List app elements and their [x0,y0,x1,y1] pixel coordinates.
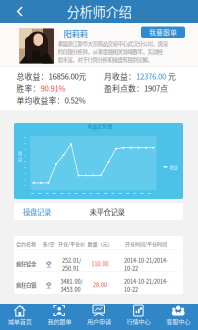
staticText: 总收益：16856.00元 [16,70,86,82]
button[interactable]: 我的跟单 [40,304,79,330]
staticText: 单均收益率：0.52% [16,94,85,106]
staticText: 胜率： [16,82,40,94]
staticText: 多/空 [42,240,54,247]
staticText: 28.00 [93,281,107,289]
staticText: 阳莉莉 [63,27,87,39]
staticText: 开仓/平仓价 [58,240,85,247]
button[interactable]: 我要跟单 [141,26,185,38]
button[interactable]: 操盘记录 [17,204,57,220]
staticText: 2014-10-21/2014- 10-22 [124,256,168,272]
staticText: 252.01/ 250.91 [62,256,81,272]
staticText: 开仓时间/平仓时间 [125,240,167,247]
staticText: （元） [89,126,101,132]
staticText: 行情中心 [127,317,151,326]
button[interactable]: 用户申请 [79,304,119,330]
button[interactable]: 客服中心 [158,304,198,330]
staticText: 收益 [169,164,177,170]
staticText: 数量（元） [87,240,112,247]
staticText: 客服中心 [166,317,190,326]
staticText: 元 [166,70,176,82]
button[interactable]: 行情中心 [119,304,158,330]
staticText: 用户申请 [87,317,111,326]
staticText: 空 [46,260,51,268]
staticText: 疯狂白银 [16,281,36,289]
button[interactable]: 返回 [12,2,28,21]
staticText: 90.91% [40,82,65,94]
staticText: 我要跟单 [149,27,177,37]
staticText: 城单首页 [8,317,32,326]
staticText: 隶属浙江新华大宗商品交易中心武汉分公司，资深 的白银分析师，从事金融相关领域数年… [57,39,167,63]
button[interactable]: 城单首页 [0,304,40,330]
staticText: 空 [46,281,51,289]
staticText: 操盘记录 [23,207,51,217]
staticText: 合约名称 [16,240,36,247]
staticText: 收益走势图 [87,122,112,129]
staticText: 月收益： [104,70,136,82]
staticText: 110.00 [91,260,108,268]
staticText: 12376.00 [136,70,166,82]
staticText: 分析师介绍 [66,2,131,21]
staticText: 盈利点数：1907点 [104,82,168,94]
button[interactable]: 未平仓记录 [83,204,131,220]
staticText: 2014-10-21/2014- 10-22 [124,277,168,293]
staticText: 3481.00/ 3453.00 [60,277,82,293]
staticText: 收 益 [18,150,22,162]
staticText: 疯狂锰金 [16,260,36,268]
staticText: 我的跟单 [47,317,71,326]
staticText: 未平仓记录 [89,207,124,217]
